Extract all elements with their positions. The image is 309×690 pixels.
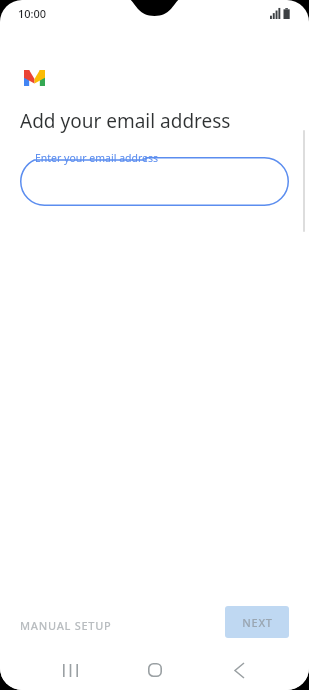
button[interactable]: Back xyxy=(219,650,259,690)
staticText: 10:00 xyxy=(18,6,47,21)
button[interactable]: Recents xyxy=(50,650,90,690)
staticText: MANUAL SETUP xyxy=(20,618,112,633)
button[interactable]: MANUAL SETUP xyxy=(14,610,118,641)
staticText: Enter your email address xyxy=(35,151,159,165)
staticText: Add your email address xyxy=(20,108,231,134)
button[interactable]: NEXT xyxy=(225,606,289,638)
staticText: NEXT xyxy=(242,615,273,630)
button[interactable]: Home xyxy=(135,650,175,690)
button[interactable]: Enter your email address xyxy=(20,157,289,206)
